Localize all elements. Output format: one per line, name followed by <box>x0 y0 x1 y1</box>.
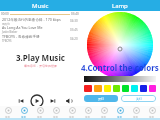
button[interactable]: Previous <box>17 97 25 105</box>
staticText: 菜单 <box>5 115 11 118</box>
staticText: TFBOYS <box>2 39 12 43</box>
button[interactable]: Colour swatch <box>122 85 129 92</box>
staticText: As Long As You Love Me <box>2 25 43 30</box>
button[interactable]: Colour swatch <box>140 85 147 92</box>
button[interactable]: Colour swatch <box>104 85 111 92</box>
button[interactable]: Play <box>30 94 44 108</box>
button[interactable]: Colour swatch <box>113 85 120 92</box>
button[interactable]: Colour swatch <box>94 85 102 92</box>
button[interactable]: 菜单 <box>48 106 64 118</box>
button[interactable]: 菜单 <box>64 106 80 118</box>
button[interactable]: 菜单 <box>80 106 96 118</box>
staticText: 关灯 <box>136 97 142 101</box>
button[interactable]: 菜单 <box>144 106 160 118</box>
button[interactable]: 菜单 <box>96 106 112 118</box>
button[interactable]: Volume <box>65 97 73 105</box>
staticText: 菜单 <box>149 115 155 118</box>
staticText: TFBOYS - 青春修炼手册 <box>2 34 40 39</box>
button[interactable]: 菜单 <box>32 106 48 118</box>
button[interactable]: Brightness <box>84 76 156 82</box>
staticText: 3.Play Music <box>16 52 65 63</box>
button[interactable]: TFBOYS - 青春修炼手册 <box>0 34 80 43</box>
staticText: 菜单 <box>21 115 27 118</box>
staticText: 03:40 <box>71 12 79 16</box>
staticText: 开灯 <box>98 97 104 101</box>
staticText: 04:20 <box>70 37 78 41</box>
staticText: 菜单 <box>53 115 59 118</box>
staticText: 03:45 <box>70 28 78 32</box>
button[interactable]: Colour swatch <box>131 85 138 92</box>
button[interactable]: Colour swatch <box>149 85 156 92</box>
button[interactable]: 菜单 <box>112 106 128 118</box>
button[interactable]: 开灯 <box>84 95 118 102</box>
staticText: 菜单 <box>37 115 43 118</box>
staticText: 菜单 <box>69 115 75 118</box>
staticText: 菜单 <box>133 115 139 118</box>
button[interactable]: 关灯 <box>121 95 156 102</box>
button[interactable]: As Long As You Love Me <box>0 25 80 34</box>
staticText: 菜单 <box>85 115 91 118</box>
staticText: Lamp <box>112 2 128 10</box>
staticText: 04:30 <box>70 19 78 23</box>
staticText: 菜单 <box>117 115 123 118</box>
staticText: 4.Control the colors <box>81 62 159 73</box>
button[interactable]: Colour swatch <box>84 85 92 92</box>
button[interactable]: 菜单 <box>16 106 32 118</box>
staticText: 菜单 <box>101 115 107 118</box>
button[interactable]: 菜单 <box>128 106 144 118</box>
button[interactable]: 菜单 <box>0 106 16 118</box>
staticText: 2012年最流行的歌曲合辑 - 170 kbps <box>2 17 61 22</box>
staticText: Justin Bieber <box>2 30 18 34</box>
staticText: 00:00 <box>1 12 9 16</box>
staticText: 播放音乐，开启你的世界 <box>24 64 57 68</box>
staticText: 周杰伦 <box>2 22 10 25</box>
staticText: Music <box>32 2 49 10</box>
button[interactable]: Next <box>49 97 57 105</box>
button[interactable]: 2012年最流行的歌曲合辑 - 170 kbps <box>0 16 80 25</box>
